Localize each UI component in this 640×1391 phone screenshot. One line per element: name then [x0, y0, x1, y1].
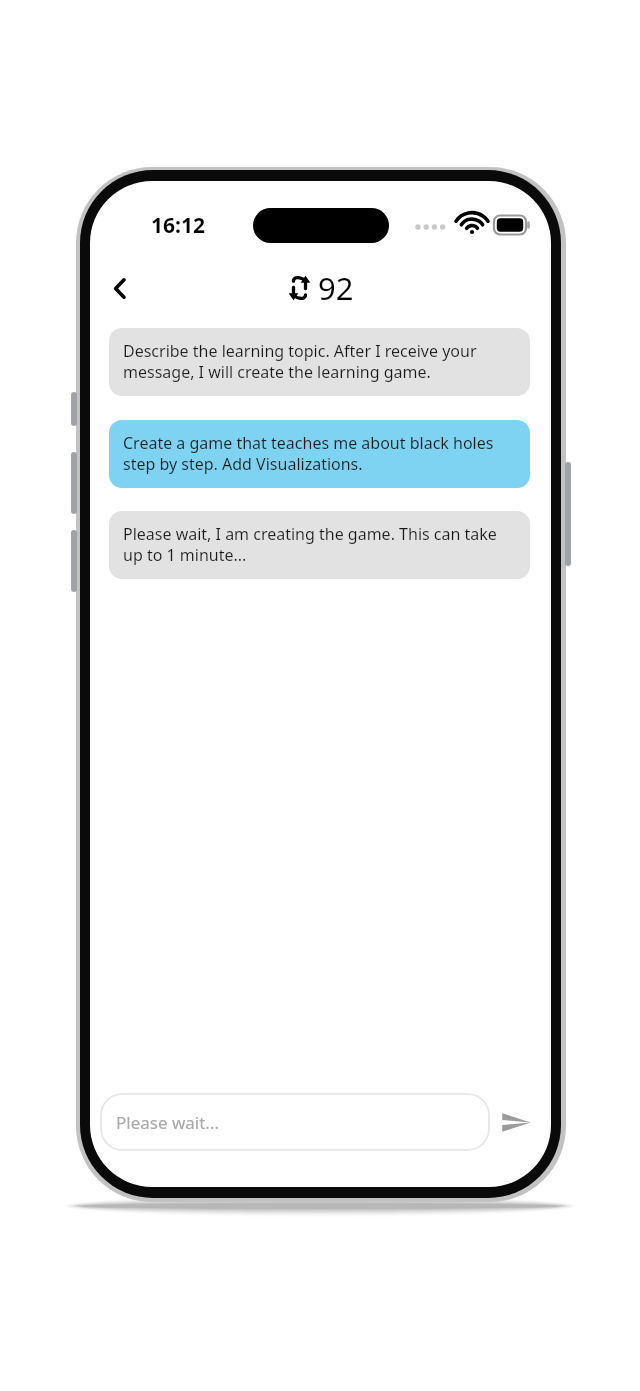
button[interactable]: Create a game that teaches me about blac…	[109, 420, 530, 488]
button[interactable]: Send	[490, 1096, 542, 1148]
staticText: 16:12	[151, 211, 205, 240]
button[interactable]: Back	[97, 265, 143, 311]
button[interactable]: Please wait, I am creating the game. Thi…	[109, 511, 530, 579]
staticText: Create a game that teaches me about blac…	[123, 432, 516, 475]
staticText: Describe the learning topic. After I rec…	[123, 340, 516, 383]
button[interactable]: Describe the learning topic. After I rec…	[109, 328, 530, 396]
staticText: 92	[318, 267, 354, 309]
staticText: Please wait...	[116, 1111, 220, 1134]
button[interactable]: Please wait...	[100, 1093, 490, 1151]
staticText: Please wait, I am creating the game. Thi…	[123, 523, 516, 566]
